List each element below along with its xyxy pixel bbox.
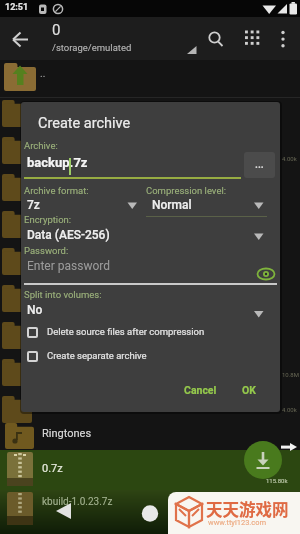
staticText: 天天游戏网	[206, 497, 289, 521]
button[interactable]: kbuild-1.0.23.7z	[0, 490, 300, 534]
staticText: No	[27, 303, 43, 317]
staticText: 4.00k	[282, 155, 297, 162]
staticText: 0.7z	[42, 462, 63, 475]
staticText: www.ttyl123.com	[208, 518, 267, 527]
button[interactable]: ..	[0, 60, 300, 98]
staticText: Archive format:	[24, 185, 89, 196]
button[interactable]	[135, 498, 165, 526]
staticText: Ringtones	[42, 427, 92, 440]
button[interactable]: 0.7z	[0, 450, 300, 490]
staticText: Normal	[152, 198, 192, 212]
staticText: ..	[40, 68, 46, 80]
staticText: Cancel	[184, 384, 217, 396]
staticText: 4.00k	[282, 406, 297, 413]
button[interactable]: Create separate archive	[21, 346, 271, 368]
staticText: Delete source files after compression	[47, 326, 205, 337]
button[interactable]: Ringtones	[0, 412, 300, 450]
staticText: backup.7z	[27, 155, 88, 170]
staticText: 0	[52, 21, 61, 39]
staticText: Encryption:	[24, 214, 72, 225]
staticText: 115.80k	[266, 477, 288, 484]
button[interactable]	[202, 25, 228, 51]
staticText: 12:51	[5, 2, 29, 13]
button[interactable]	[240, 25, 266, 51]
staticText: Password:	[24, 245, 69, 256]
button[interactable]: Data (AES-256)	[21, 226, 271, 248]
button[interactable]: 7z	[21, 196, 141, 218]
button[interactable]: Cancel	[170, 377, 230, 403]
button[interactable]: No	[21, 301, 271, 323]
button[interactable]	[6, 25, 36, 55]
button[interactable]	[244, 441, 282, 479]
staticText: ...	[255, 159, 264, 171]
button[interactable]	[253, 264, 277, 284]
staticText: kbuild-1.0.23.7z	[42, 496, 113, 508]
button[interactable]	[48, 498, 78, 526]
staticText: Create archive	[38, 115, 131, 132]
staticText: Create separate archive	[47, 350, 147, 361]
button[interactable]: Normal	[145, 196, 270, 218]
staticText: 7z	[27, 198, 40, 212]
staticText: Enter password	[27, 259, 111, 273]
button[interactable]	[272, 25, 296, 51]
button[interactable]: OK	[229, 377, 269, 403]
button[interactable]: Delete source files after compression	[21, 322, 271, 344]
staticText: Data (AES-256)	[27, 228, 110, 242]
staticText: 10.8M	[282, 371, 299, 378]
staticText: Split into volumes:	[24, 289, 102, 300]
staticText: Archive:	[24, 140, 58, 151]
staticText: Compression level:	[146, 185, 227, 196]
button[interactable]: ...	[244, 152, 275, 178]
staticText: OK	[242, 384, 256, 396]
staticText: /storage/emulated	[52, 42, 132, 53]
